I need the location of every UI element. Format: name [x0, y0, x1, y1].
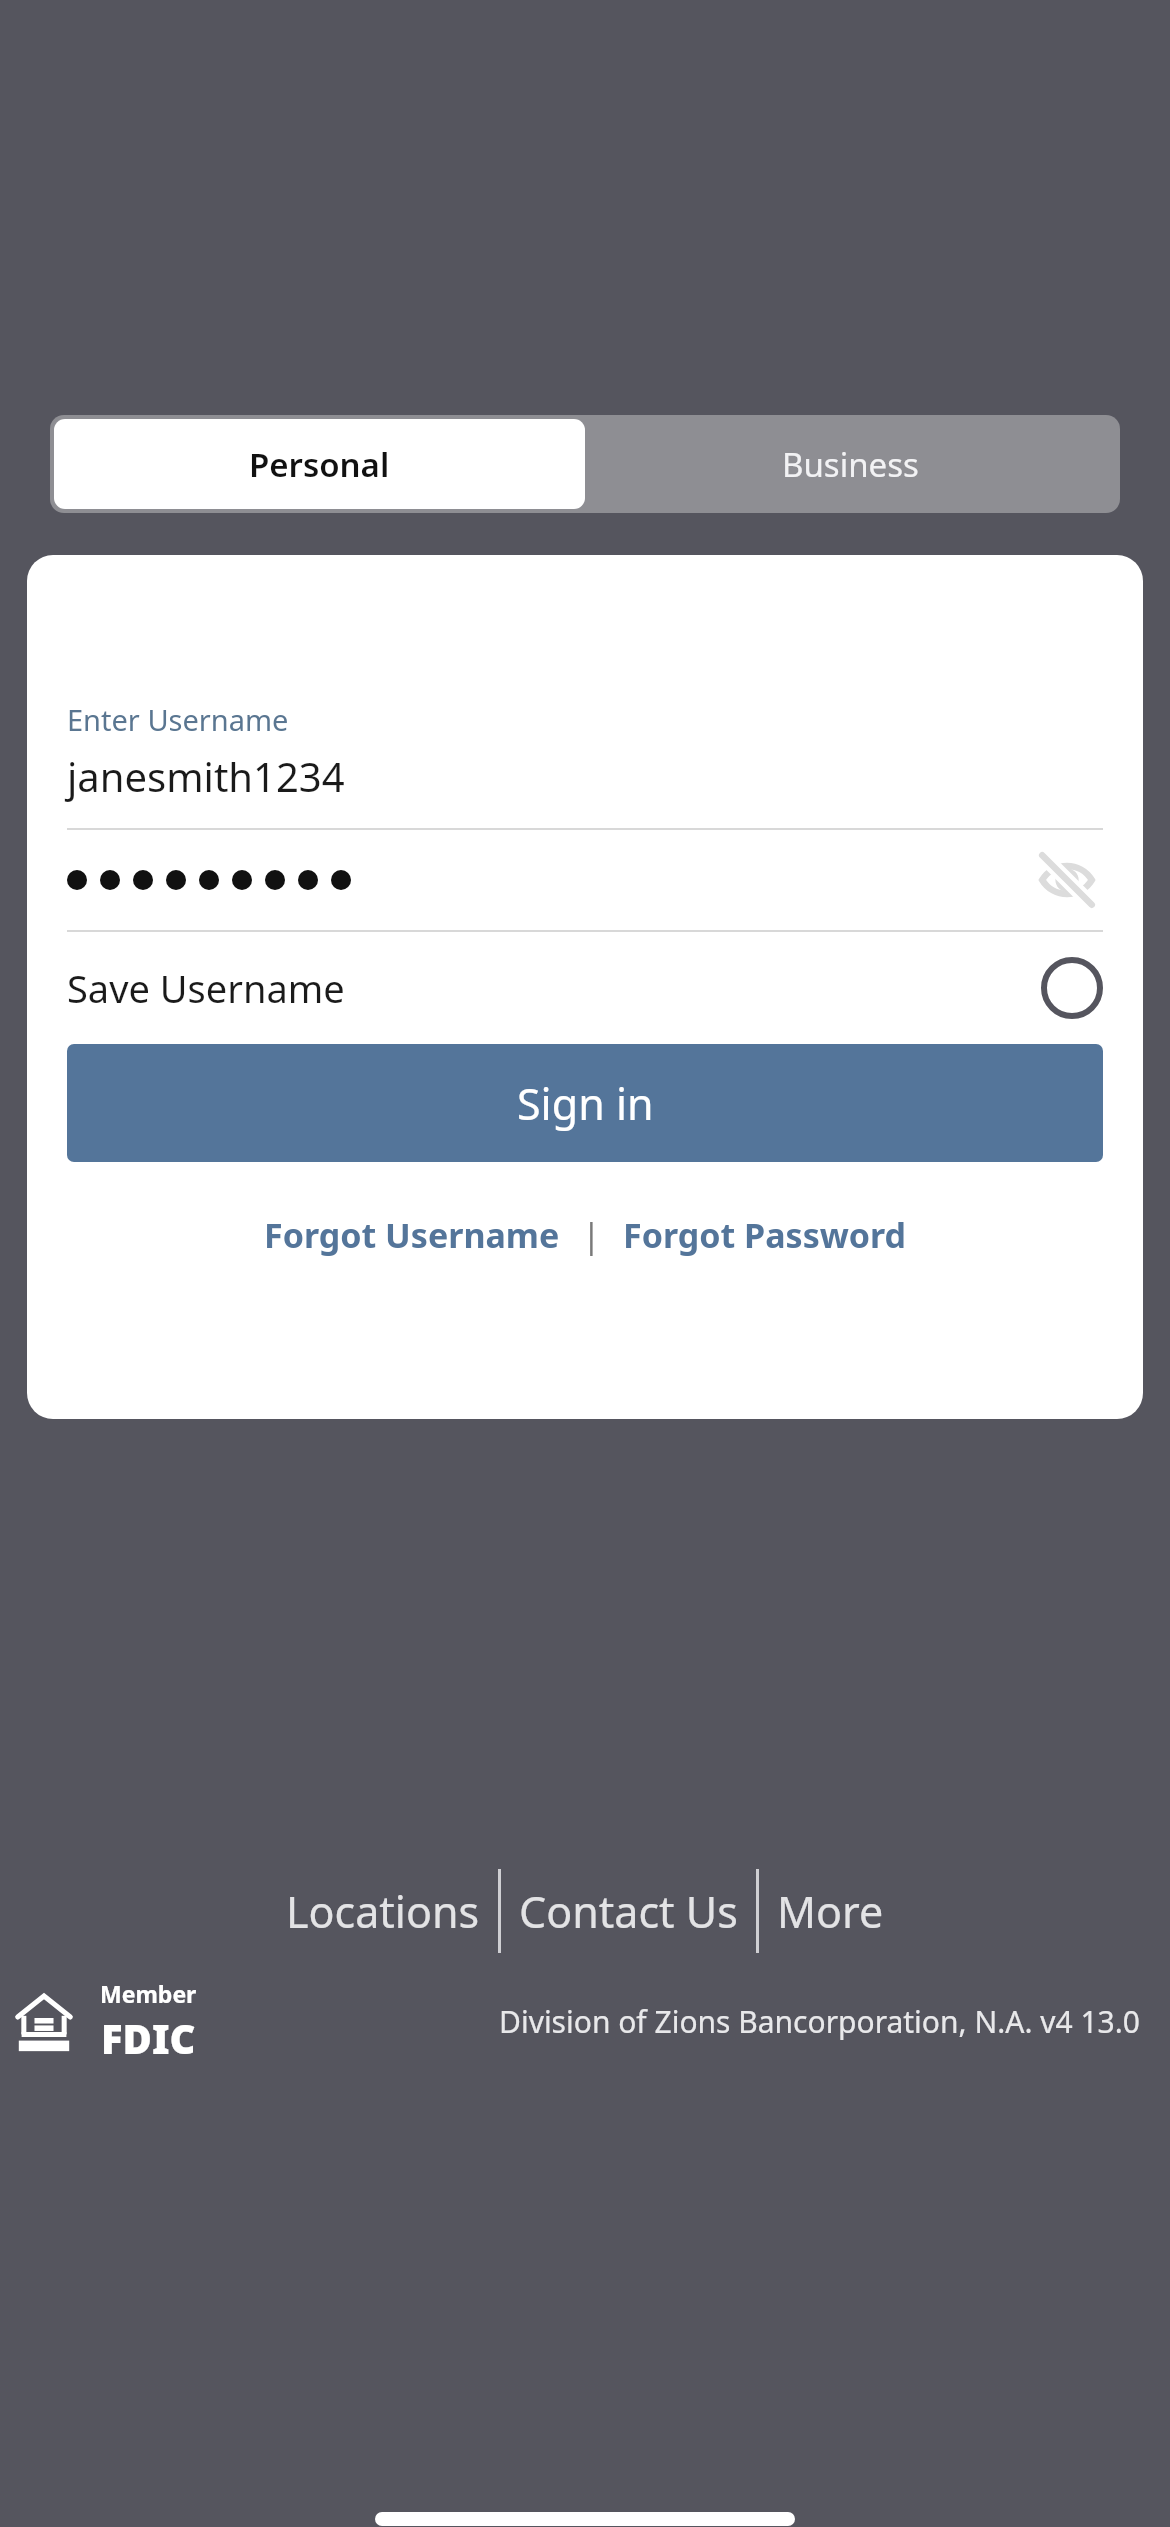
button[interactable]: More [759, 1882, 902, 1941]
button[interactable]: Personal [54, 419, 585, 509]
button[interactable]: Contact Us [501, 1882, 756, 1941]
staticText: Contact Us [519, 1882, 738, 1941]
staticText: Member [100, 1978, 197, 2009]
button[interactable]: Save Username [67, 932, 1103, 1044]
button[interactable]: Locations [268, 1882, 498, 1941]
staticText: Forgot Password [623, 1212, 907, 1258]
staticText: Locations [286, 1882, 480, 1941]
staticText: | [582, 1212, 601, 1258]
staticText: Save Username [67, 962, 345, 1014]
staticText: Forgot Username [264, 1212, 560, 1258]
staticText: janesmith1234 [67, 749, 345, 803]
staticText: FDIC [101, 2011, 196, 2065]
button[interactable]: Forgot Password [623, 1212, 907, 1258]
button[interactable]: Show password [67, 830, 1103, 930]
staticText: Division of Zions Bancorporation, N.A. v… [499, 2001, 1140, 2042]
staticText: Personal [249, 442, 390, 487]
button[interactable]: Business [585, 419, 1116, 509]
staticText: More [777, 1882, 884, 1941]
staticText: Sign in [517, 1074, 654, 1133]
button[interactable]: Sign in [67, 1044, 1103, 1162]
staticText: Enter Username [67, 700, 289, 739]
button[interactable]: Show password [1031, 844, 1103, 916]
button[interactable]: janesmith1234 [67, 749, 1103, 803]
staticText: Business [782, 442, 919, 487]
button[interactable]: Forgot Username [264, 1212, 560, 1258]
